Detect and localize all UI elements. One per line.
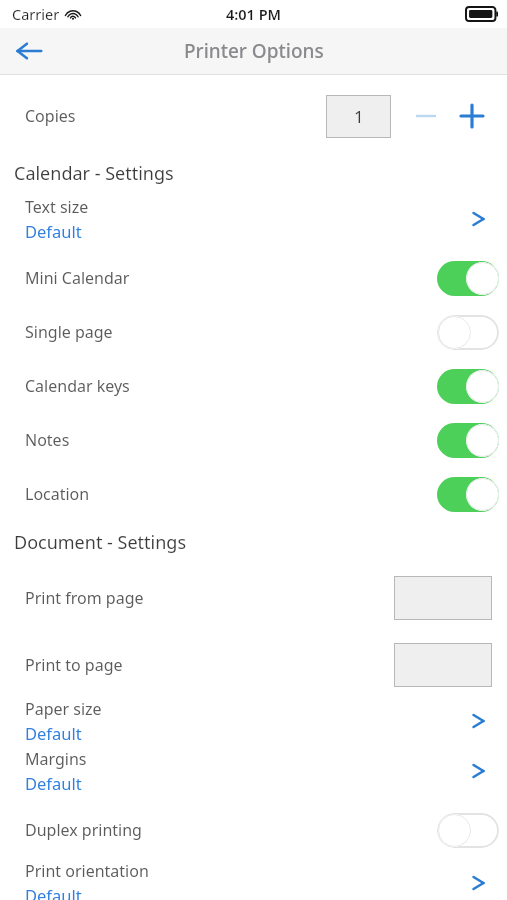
staticText: Single page [25, 321, 113, 343]
staticText: Print from page [25, 587, 144, 609]
staticText: Print to page [25, 654, 123, 676]
staticText: Default [25, 722, 82, 744]
button[interactable]: Mini Calendar [0, 254, 507, 302]
button[interactable]: 1 [326, 95, 391, 138]
button[interactable]: Text size [0, 194, 507, 244]
staticText: Text size [25, 196, 89, 218]
staticText: Duplex printing [25, 819, 142, 841]
staticText: Carrier [12, 4, 60, 24]
staticText: Printer Options [184, 38, 324, 64]
staticText: Calendar - Settings [14, 161, 174, 186]
staticText: Paper size [25, 698, 102, 720]
staticText: Margins [25, 748, 87, 770]
staticText: Calendar keys [25, 375, 130, 397]
staticText: Copies [25, 105, 76, 127]
button[interactable]: Print orientation [0, 858, 507, 900]
staticText: Location [25, 483, 90, 505]
button[interactable]: Duplex printing [0, 806, 507, 854]
button[interactable]: Print to page [0, 634, 507, 696]
button[interactable]: Increase copies [450, 94, 494, 138]
button[interactable]: Single page [0, 308, 507, 356]
staticText: Print orientation [25, 860, 149, 882]
staticText: Document - Settings [14, 530, 187, 555]
button[interactable]: Calendar keys [0, 362, 507, 410]
staticText: 1 [354, 105, 364, 128]
staticText: Default [25, 772, 82, 794]
button[interactable]: Paper size [0, 696, 507, 746]
button[interactable]: Notes [0, 416, 507, 464]
staticText: 4:01 PM [226, 4, 282, 24]
button[interactable]: Back [6, 28, 52, 74]
button[interactable]: Decrease copies [404, 94, 448, 138]
button[interactable]: Margins [0, 746, 507, 796]
button[interactable]: Copies [0, 87, 507, 145]
button[interactable]: Print from page [0, 567, 507, 629]
staticText: Default [25, 884, 82, 900]
staticText: Notes [25, 429, 70, 451]
staticText: Default [25, 220, 82, 242]
staticText: Mini Calendar [25, 267, 130, 289]
button[interactable]: Location [0, 470, 507, 518]
